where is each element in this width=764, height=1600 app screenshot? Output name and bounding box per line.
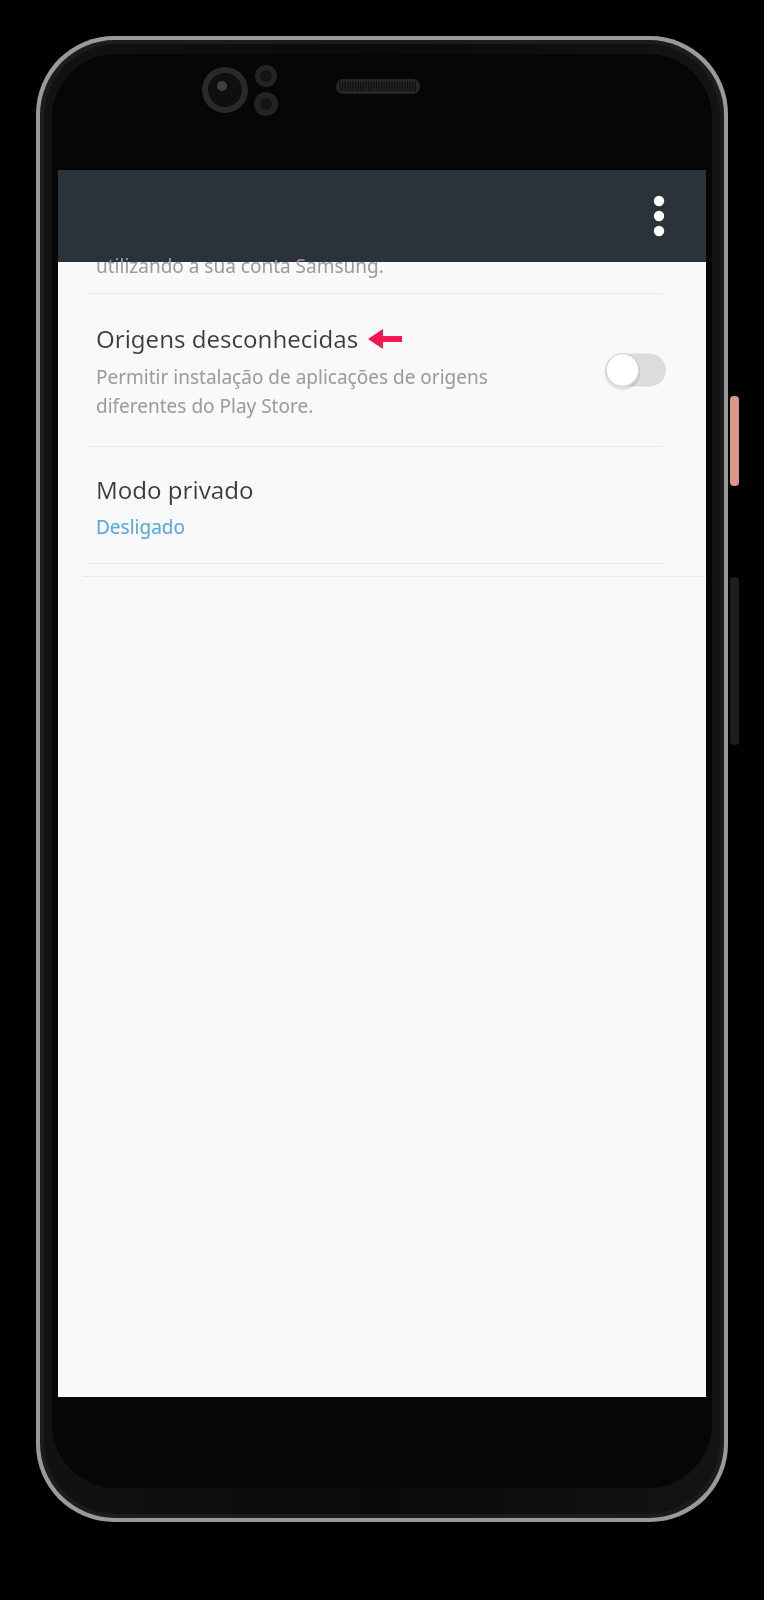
staticText: diferentes do Play Store. bbox=[96, 393, 314, 419]
button[interactable]: Mais opções bbox=[636, 193, 682, 239]
staticText: Permitir instalação de aplicações de ori… bbox=[96, 364, 488, 390]
button[interactable]: Origens desconhecidas bbox=[58, 294, 706, 446]
other: Seta para a esquerda bbox=[368, 328, 402, 350]
staticText: Origens desconhecidas bbox=[96, 322, 359, 355]
staticText: Modo privado bbox=[96, 473, 254, 506]
staticText: utilizando a sua conta Samsung. bbox=[96, 253, 384, 279]
staticText: Desligado bbox=[96, 514, 186, 540]
button[interactable]: Modo privado bbox=[58, 447, 706, 563]
button[interactable]: Origens desconhecidas, desativado bbox=[600, 342, 672, 398]
